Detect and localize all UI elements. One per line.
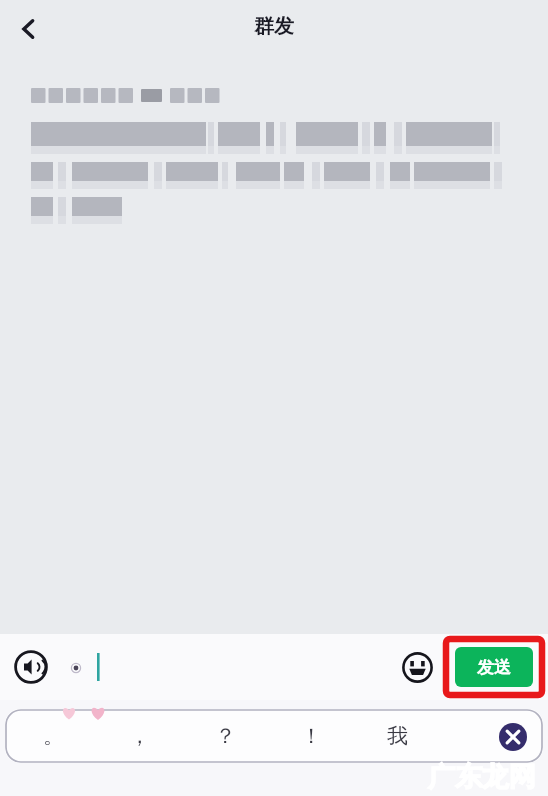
- staticText: ？: [215, 723, 236, 749]
- staticText: ，: [129, 723, 150, 749]
- button[interactable]: [60, 645, 408, 689]
- button[interactable]: 我: [354, 709, 440, 763]
- button[interactable]: Emoji: [396, 646, 438, 688]
- staticText: 群发: [254, 14, 294, 39]
- button[interactable]: ！: [268, 709, 354, 763]
- staticText: 。: [43, 723, 64, 749]
- button[interactable]: Back: [4, 5, 52, 53]
- staticText: 发送: [477, 657, 511, 678]
- button[interactable]: ？: [182, 709, 268, 763]
- staticText: 我: [387, 723, 408, 749]
- staticText: 广东龙网: [428, 760, 536, 794]
- button[interactable]: Voice input: [8, 644, 54, 690]
- button[interactable]: 发送: [455, 647, 533, 687]
- button[interactable]: Close keyboard: [496, 720, 530, 754]
- button[interactable]: ，: [96, 709, 182, 763]
- staticText: ！: [301, 723, 322, 749]
- button[interactable]: 。: [10, 709, 96, 763]
